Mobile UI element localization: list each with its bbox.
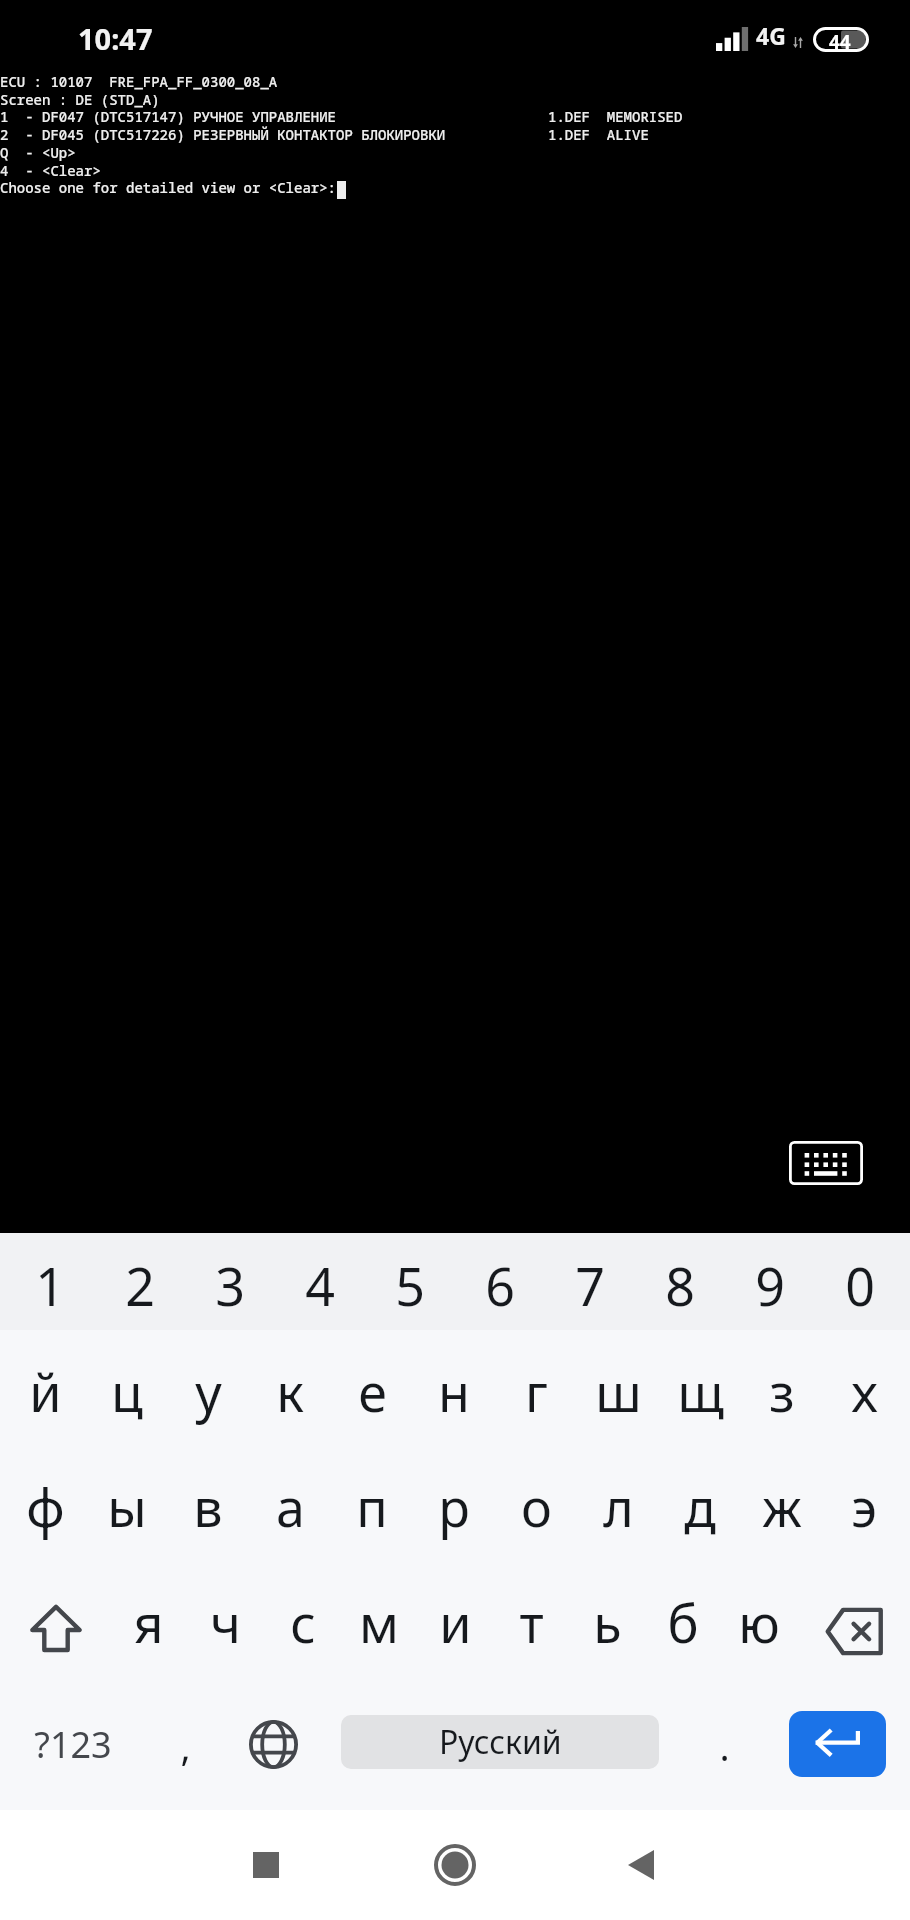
staticText: й — [29, 1356, 62, 1427]
button[interactable]: Show keyboard — [776, 1129, 876, 1197]
staticText: 7 — [575, 1250, 605, 1321]
staticText: 1.DEF MEMORISED — [548, 107, 683, 126]
button[interactable]: з — [741, 1330, 823, 1446]
button[interactable]: Backspace — [797, 1562, 905, 1678]
button[interactable]: 3 — [185, 1233, 275, 1330]
button[interactable]: 6 — [455, 1233, 545, 1330]
button[interactable]: , — [145, 1678, 225, 1810]
staticText: 2 - DF045 (DTC517226) РЕЗЕРВНЫЙ КОНТАКТО… — [0, 125, 446, 144]
staticText: е — [358, 1356, 387, 1427]
staticText: Screen : DE (STD_A) — [0, 90, 160, 109]
staticText: ы — [107, 1471, 147, 1542]
button[interactable]: п — [331, 1446, 413, 1562]
staticText: Choose one for detailed view or <Clear>: — [0, 178, 336, 197]
staticText: л — [603, 1471, 634, 1542]
button[interactable]: ы — [86, 1446, 167, 1562]
button[interactable]: ж — [741, 1446, 823, 1562]
button[interactable]: 8 — [635, 1233, 725, 1330]
staticText: , — [180, 1720, 191, 1772]
staticText: у — [195, 1356, 222, 1427]
button[interactable]: Recents — [221, 1820, 311, 1910]
button[interactable]: 2 — [95, 1233, 185, 1330]
button[interactable]: ц — [86, 1330, 167, 1446]
staticText: ц — [111, 1356, 143, 1427]
button[interactable]: т — [493, 1562, 569, 1678]
button[interactable]: а — [249, 1446, 331, 1562]
button[interactable]: э — [823, 1446, 905, 1562]
staticText: з — [769, 1356, 795, 1427]
button[interactable]: Русский — [341, 1715, 659, 1769]
button[interactable]: 1 — [5, 1233, 95, 1330]
staticText: . — [719, 1720, 730, 1772]
button[interactable]: Home — [410, 1820, 500, 1910]
staticText: 8 — [665, 1250, 695, 1321]
button[interactable]: к — [249, 1330, 331, 1446]
button[interactable]: Back — [596, 1820, 686, 1910]
button[interactable]: 9 — [725, 1233, 815, 1330]
staticText: и — [439, 1587, 472, 1658]
staticText: ж — [762, 1471, 802, 1542]
staticText: э — [851, 1471, 877, 1542]
button[interactable]: й — [5, 1330, 86, 1446]
button[interactable]: Shift — [5, 1562, 110, 1678]
button[interactable]: Change keyboard language — [215, 1678, 331, 1810]
staticText: а — [276, 1471, 305, 1542]
button[interactable]: . — [659, 1678, 789, 1810]
button[interactable]: е — [331, 1330, 413, 1446]
button[interactable]: Enter — [789, 1711, 886, 1777]
button[interactable]: и — [417, 1562, 493, 1678]
button[interactable]: г — [495, 1330, 577, 1446]
button[interactable]: ч — [187, 1562, 264, 1678]
staticText: 2 — [125, 1250, 155, 1321]
button[interactable]: р — [413, 1446, 495, 1562]
staticText: ч — [210, 1587, 241, 1658]
button[interactable]: ю — [721, 1562, 797, 1678]
button[interactable]: 0 — [815, 1233, 905, 1330]
button[interactable]: ш — [577, 1330, 659, 1446]
staticText: т — [519, 1587, 544, 1658]
staticText: ECU : 10107 FRE_FPA_FF_0300_08_A — [0, 72, 278, 91]
button[interactable]: 5 — [365, 1233, 455, 1330]
staticText: г — [525, 1356, 548, 1427]
button[interactable]: ь — [569, 1562, 645, 1678]
staticText: ф — [26, 1471, 65, 1542]
button[interactable]: н — [413, 1330, 495, 1446]
staticText: 1.DEF ALIVE — [548, 125, 649, 144]
button[interactable]: ?123 — [0, 1678, 145, 1810]
staticText: Русский — [439, 1720, 562, 1764]
staticText: м — [359, 1587, 399, 1658]
button[interactable]: х — [823, 1330, 905, 1446]
button[interactable]: л — [577, 1446, 659, 1562]
staticText: 4G — [756, 20, 786, 51]
staticText: ю — [738, 1587, 780, 1658]
staticText: 10:47 — [78, 19, 153, 58]
staticText: н — [438, 1356, 470, 1427]
staticText: ш — [595, 1356, 642, 1427]
staticText: 6 — [485, 1250, 515, 1321]
staticText: ?123 — [34, 1720, 112, 1769]
button[interactable]: у — [167, 1330, 249, 1446]
staticText: 4 - <Clear> — [0, 161, 101, 180]
staticText: 1 - DF047 (DTC517147) РУЧНОЕ УПРАВЛЕНИЕ — [0, 107, 336, 126]
staticText: Q - <Up> — [0, 143, 76, 162]
staticText: щ — [677, 1356, 724, 1427]
button[interactable]: ф — [5, 1446, 86, 1562]
button[interactable]: с — [264, 1562, 341, 1678]
staticText: 1 — [35, 1250, 65, 1321]
button[interactable]: м — [341, 1562, 417, 1678]
button[interactable]: б — [645, 1562, 721, 1678]
staticText: я — [133, 1587, 164, 1658]
button[interactable]: 7 — [545, 1233, 635, 1330]
staticText: б — [667, 1587, 699, 1658]
button[interactable]: о — [495, 1446, 577, 1562]
button[interactable]: д — [659, 1446, 741, 1562]
button[interactable]: в — [167, 1446, 249, 1562]
staticText: в — [193, 1471, 223, 1542]
button[interactable]: щ — [659, 1330, 741, 1446]
staticText: 3 — [215, 1250, 245, 1321]
staticText: с — [290, 1587, 316, 1658]
button[interactable]: 4 — [275, 1233, 365, 1330]
staticText: к — [276, 1356, 304, 1427]
staticText: о — [521, 1471, 552, 1542]
button[interactable]: я — [110, 1562, 187, 1678]
